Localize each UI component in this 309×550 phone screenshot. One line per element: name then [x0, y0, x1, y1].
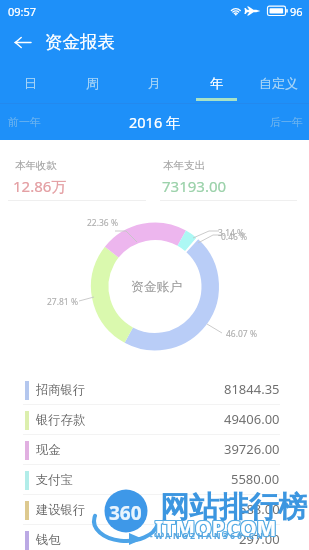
- button[interactable]: 银行存款: [0, 405, 309, 435]
- button[interactable]: 前一年: [2, 104, 47, 140]
- button[interactable]: 后一年: [264, 104, 309, 140]
- staticText: 建设银行: [36, 502, 86, 517]
- button[interactable]: 招商银行: [0, 375, 309, 405]
- staticText: ITMOP.COM: [155, 513, 277, 542]
- staticText: 297.00: [239, 530, 280, 548]
- button[interactable]: Back: [9, 28, 37, 56]
- staticText: 本年支出: [163, 159, 205, 172]
- staticText: 资金报表: [45, 31, 115, 53]
- button[interactable]: 周: [61, 66, 123, 103]
- staticText: 12.86万: [13, 176, 67, 196]
- staticText: ITMOP.COM: [154, 515, 276, 544]
- staticText: 月: [148, 75, 161, 91]
- staticText: -WANGZHAN360.CN-: [150, 530, 271, 541]
- staticText: 钱包: [36, 532, 61, 547]
- staticText: 前一年: [8, 115, 41, 129]
- staticText: 5580.00: [231, 470, 280, 488]
- staticText: 09:57: [8, 4, 37, 19]
- staticText: 本年收款: [15, 159, 57, 172]
- staticText: 资金账户: [131, 279, 183, 295]
- staticText: 360: [109, 500, 142, 526]
- staticText: 27.81 %: [47, 296, 78, 308]
- staticText: 0.46 %: [221, 231, 248, 243]
- staticText: ITMOP.COM: [156, 514, 278, 543]
- button[interactable]: 现金: [0, 435, 309, 465]
- staticText: 39726.00: [224, 440, 280, 458]
- staticText: 96: [290, 4, 303, 19]
- button[interactable]: 年: [185, 66, 247, 103]
- staticText: 现金: [36, 442, 61, 457]
- button[interactable]: 建设银行: [0, 495, 309, 525]
- staticText: 3.14 %: [218, 227, 245, 239]
- staticText: 支付宝: [36, 472, 73, 487]
- staticText: 2016 年: [129, 112, 181, 132]
- staticText: 自定义: [259, 75, 298, 91]
- button[interactable]: 日: [0, 66, 61, 103]
- staticText: 73193.00: [162, 176, 227, 196]
- staticText: ITMOP.COM: [155, 515, 277, 544]
- button[interactable]: 钱包: [0, 525, 309, 550]
- staticText: 银行存款: [36, 412, 86, 427]
- staticText: 周: [86, 75, 99, 91]
- staticText: 日: [24, 75, 37, 91]
- staticText: ITMOP.COM: [156, 515, 278, 544]
- staticText: 招商银行: [36, 382, 86, 397]
- staticText: 22.36 %: [87, 217, 118, 229]
- staticText: 81844.35: [224, 380, 280, 398]
- staticText: ITMOP.COM: [156, 513, 278, 542]
- button[interactable]: 支付宝: [0, 465, 309, 495]
- staticText: ITMOP.COM: [155, 514, 277, 543]
- staticText: 后一年: [270, 115, 303, 129]
- staticText: 46.07 %: [226, 328, 257, 340]
- staticText: 588.00: [239, 500, 280, 518]
- staticText: ITMOP.COM: [154, 514, 276, 543]
- staticText: 49406.00: [224, 410, 280, 428]
- staticText: ITMOP.COM: [154, 513, 276, 542]
- staticText: 网站排行榜: [160, 489, 308, 526]
- staticText: 年: [210, 75, 223, 91]
- button[interactable]: 月: [123, 66, 185, 103]
- button[interactable]: 自定义: [247, 66, 309, 103]
